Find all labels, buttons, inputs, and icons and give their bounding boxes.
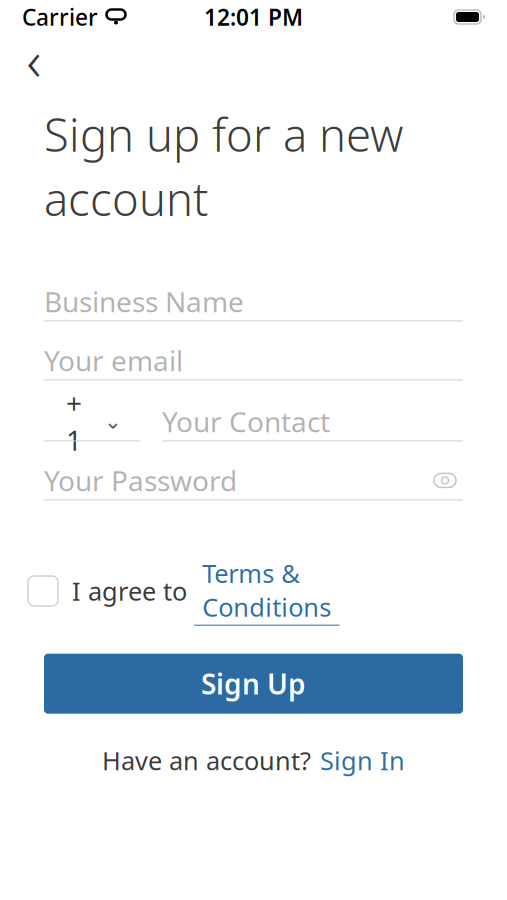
staticText: Sign Up bbox=[201, 665, 306, 702]
staticText: account bbox=[44, 168, 208, 228]
staticText: Your Password bbox=[44, 462, 237, 499]
button[interactable]: Country code +1 bbox=[44, 402, 140, 441]
button[interactable]: Sign In bbox=[320, 744, 405, 777]
staticText: Your email bbox=[44, 342, 183, 379]
staticText: Sign In bbox=[320, 744, 405, 777]
staticText: Business Name bbox=[44, 283, 244, 320]
button[interactable]: Back bbox=[12, 36, 56, 82]
staticText: Carrier bbox=[22, 2, 98, 32]
staticText: Your Contact bbox=[162, 403, 330, 440]
button[interactable]: I agree to Terms and Conditions bbox=[22, 576, 64, 606]
staticText: Sign up for a new bbox=[44, 104, 403, 164]
button[interactable]: Show password bbox=[427, 462, 463, 498]
staticText: I agree to bbox=[72, 574, 187, 608]
staticText: +1 bbox=[66, 384, 82, 459]
staticText: Have an account? bbox=[102, 744, 311, 777]
button[interactable]: Sign Up bbox=[44, 654, 463, 714]
staticText: 12:01 PM bbox=[204, 2, 303, 32]
staticText: Terms & Conditions bbox=[202, 556, 331, 624]
button[interactable]: Terms & Conditions bbox=[194, 556, 339, 626]
staticText: ‹ bbox=[26, 22, 41, 96]
staticText: ⌄ bbox=[104, 409, 122, 433]
